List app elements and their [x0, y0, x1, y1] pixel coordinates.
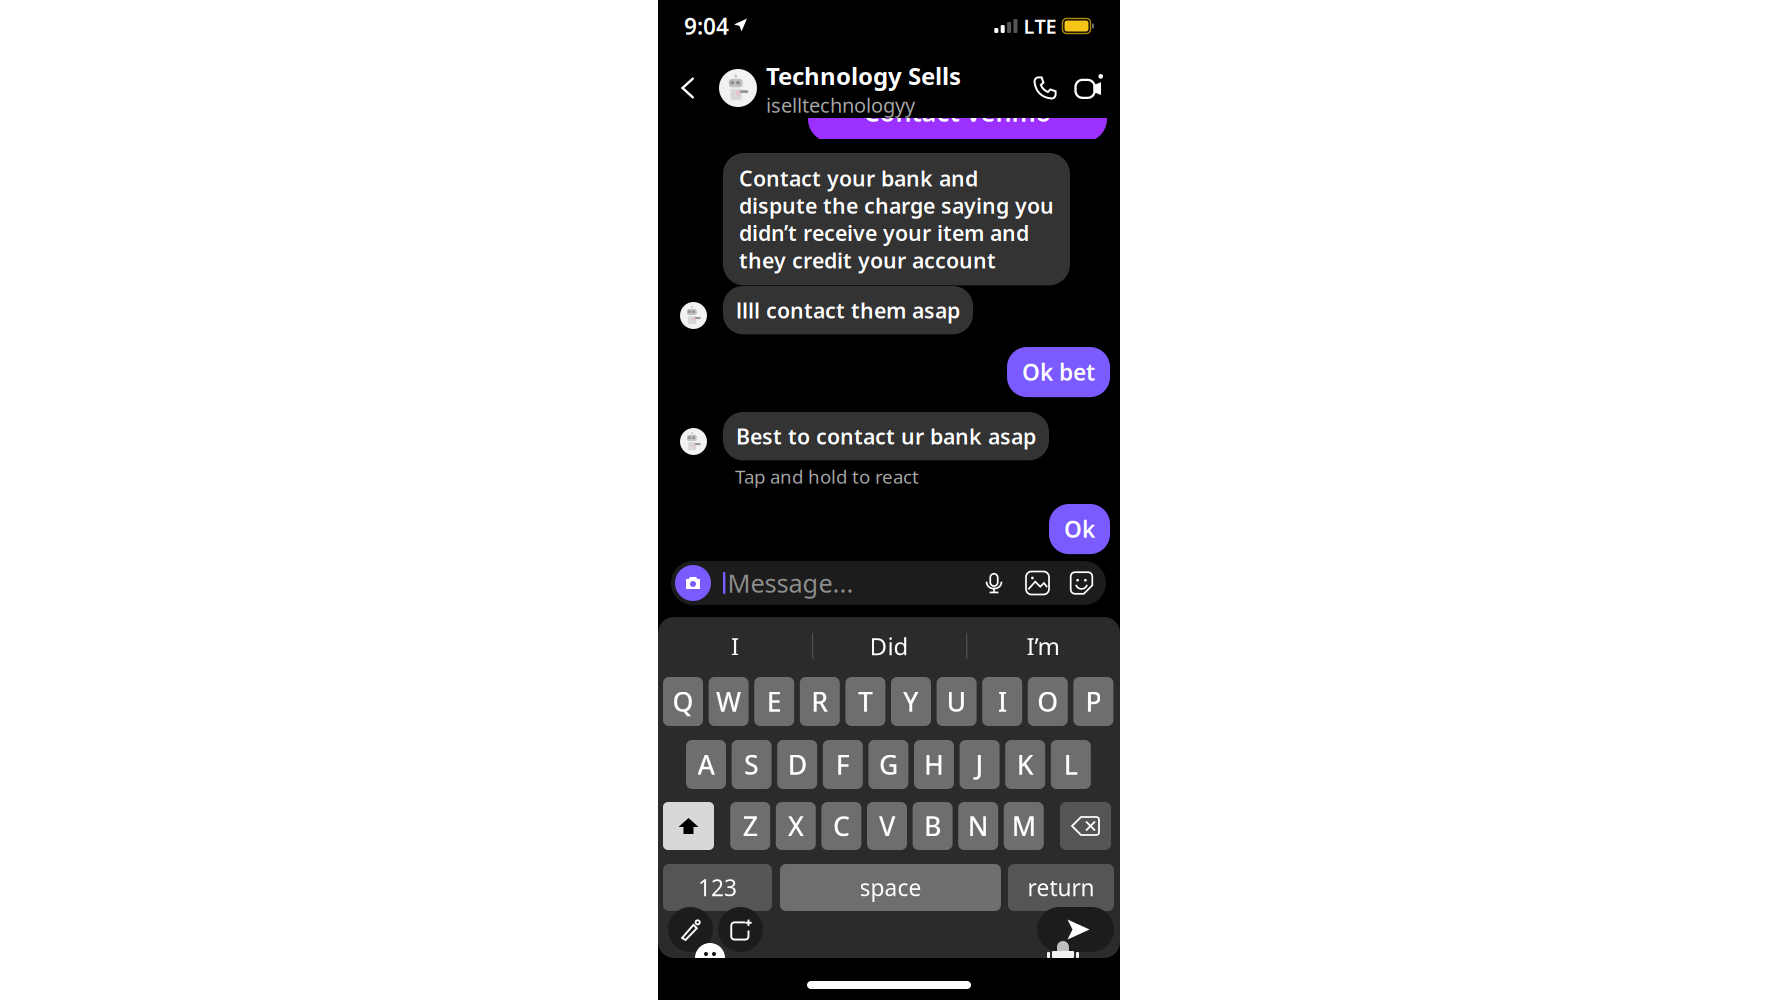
staticText: Contact venmo: [863, 95, 1051, 129]
staticText: F: [836, 747, 850, 782]
staticText: Best to contact ur bank asap: [736, 422, 1036, 450]
button[interactable]: G: [868, 740, 908, 789]
button[interactable]: llll contact them asap: [723, 286, 973, 334]
staticText: Tap and hold to react: [735, 464, 919, 489]
staticText: M: [1012, 808, 1036, 844]
staticText: U: [947, 684, 967, 719]
button[interactable]: Create sticker: [718, 907, 763, 952]
staticText: Ok bet: [1022, 357, 1095, 387]
staticText: P: [1085, 684, 1101, 719]
staticText: G: [879, 747, 898, 782]
staticText: X: [788, 808, 804, 844]
button[interactable]: Photos: [1026, 571, 1049, 594]
staticText: O: [1037, 684, 1058, 719]
button[interactable]: Shift: [663, 802, 714, 850]
button[interactable]: J: [960, 740, 1000, 789]
staticText: Z: [743, 808, 758, 844]
staticText: L: [1064, 747, 1078, 782]
button[interactable]: N: [958, 802, 998, 850]
staticText: S: [744, 747, 759, 782]
button[interactable]: U: [937, 677, 977, 726]
staticText: Technology Sells: [766, 60, 961, 92]
staticText: A: [697, 747, 714, 782]
button[interactable]: return: [1008, 864, 1114, 911]
button[interactable]: Did: [812, 617, 966, 675]
staticText: iselltechnologyy: [766, 92, 915, 118]
button[interactable]: L: [1051, 740, 1091, 789]
button[interactable]: H: [914, 740, 954, 789]
button[interactable]: Video call: [1074, 70, 1106, 106]
button[interactable]: Ok: [1049, 504, 1110, 554]
button[interactable]: T: [845, 677, 885, 726]
button[interactable]: Ok bet: [1007, 347, 1110, 397]
button[interactable]: Delete: [1060, 802, 1111, 850]
button[interactable]: Y: [891, 677, 931, 726]
button[interactable]: O: [1028, 677, 1068, 726]
button[interactable]: M: [1004, 802, 1044, 850]
staticText: LTE: [1023, 13, 1056, 39]
button[interactable]: Contact your bank and dispute the charge…: [723, 153, 1070, 285]
button[interactable]: Best to contact ur bank asap: [723, 412, 1049, 460]
button[interactable]: R: [800, 677, 840, 726]
button[interactable]: K: [1005, 740, 1045, 789]
staticText: Q: [672, 684, 693, 719]
button[interactable]: Stickers: [1070, 571, 1093, 594]
button[interactable]: P: [1073, 677, 1113, 726]
staticText: space: [859, 872, 921, 902]
button[interactable]: X: [776, 802, 816, 850]
button[interactable]: V: [867, 802, 907, 850]
button[interactable]: Technology Sells: [719, 59, 961, 117]
button[interactable]: E: [754, 677, 794, 726]
button[interactable]: I’m: [966, 617, 1120, 675]
button[interactable]: S: [732, 740, 772, 789]
staticText: E: [767, 684, 782, 719]
button[interactable]: Send: [1037, 907, 1114, 952]
staticText: Ok: [1064, 514, 1095, 544]
staticText: B: [924, 808, 941, 844]
staticText: W: [716, 684, 741, 719]
staticText: C: [833, 808, 850, 844]
staticText: 123: [698, 872, 737, 902]
staticText: V: [879, 808, 895, 844]
staticText: I: [731, 630, 739, 662]
staticText: Y: [903, 684, 919, 719]
button[interactable]: space: [780, 864, 1001, 911]
button[interactable]: B: [913, 802, 953, 850]
button[interactable]: Back: [675, 71, 701, 105]
button[interactable]: Voice message: [983, 572, 1005, 594]
button[interactable]: Draw: [668, 907, 713, 952]
staticText: T: [858, 684, 873, 719]
staticText: 9:04: [684, 11, 729, 41]
staticText: return: [1027, 872, 1094, 902]
button[interactable]: Z: [730, 802, 770, 850]
staticText: llll contact them asap: [736, 296, 960, 324]
button[interactable]: Q: [663, 677, 703, 726]
staticText: Contact your bank and dispute the charge…: [739, 164, 1054, 274]
staticText: N: [968, 808, 989, 844]
staticText: R: [811, 684, 828, 719]
button[interactable]: D: [777, 740, 817, 789]
button[interactable]: Audio call: [1030, 70, 1060, 106]
button[interactable]: C: [821, 802, 861, 850]
button[interactable]: W: [709, 677, 749, 726]
staticText: D: [788, 747, 807, 782]
button[interactable]: A: [686, 740, 726, 789]
staticText: I’m: [1026, 630, 1059, 662]
staticText: K: [1017, 747, 1034, 782]
staticText: J: [976, 747, 984, 782]
button[interactable]: Camera: [675, 565, 711, 601]
button[interactable]: I: [982, 677, 1022, 726]
button[interactable]: I: [658, 617, 812, 675]
button[interactable]: F: [823, 740, 863, 789]
button[interactable]: 123: [663, 864, 772, 911]
staticText: I: [998, 684, 1007, 719]
staticText: H: [924, 747, 944, 782]
staticText: Did: [869, 630, 908, 662]
staticText: Message...: [727, 566, 853, 600]
